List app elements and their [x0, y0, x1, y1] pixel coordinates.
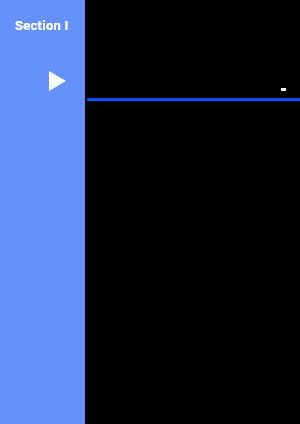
- button[interactable]: Section I: [15, 18, 69, 33]
- button[interactable]: Play: [49, 71, 66, 91]
- staticText: Section I: [15, 18, 69, 33]
